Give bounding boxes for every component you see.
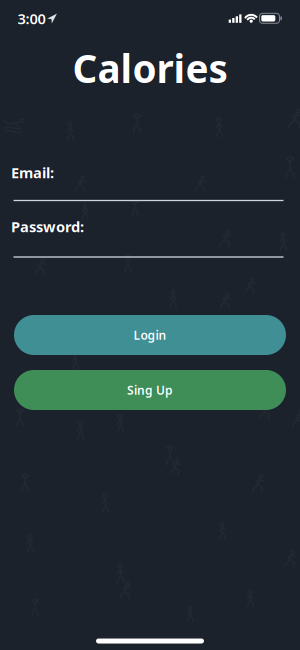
staticText: Email: — [11, 163, 54, 182]
staticText: Sing Up — [127, 382, 173, 398]
button[interactable]: Login — [14, 315, 286, 355]
staticText: Login — [133, 327, 166, 343]
staticText: Password: — [11, 217, 84, 236]
staticText: Calories — [72, 42, 227, 94]
button[interactable]: Sing Up — [14, 370, 286, 410]
staticText: 3:00 — [17, 9, 45, 28]
